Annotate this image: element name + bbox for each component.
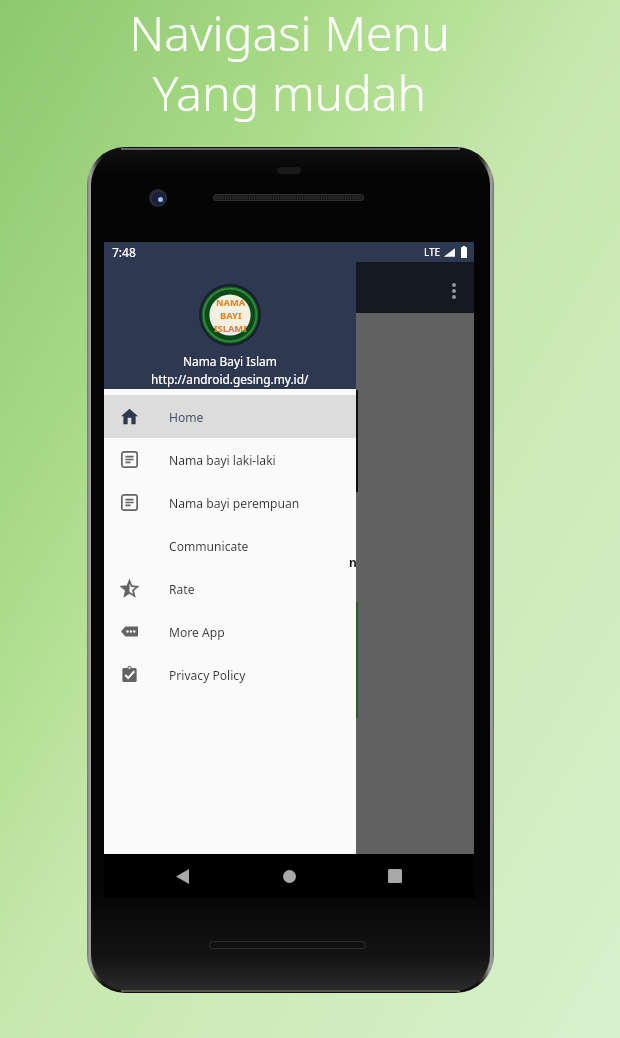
staticText: NAMA bbox=[216, 296, 246, 309]
staticText: Rate bbox=[169, 581, 195, 597]
button[interactable]: Recent apps bbox=[378, 854, 412, 898]
staticText: Navigasi Menu Yang mudah bbox=[129, 0, 450, 125]
button[interactable]: Communicate bbox=[104, 524, 356, 567]
staticText: http://android.gesing.my.id/ bbox=[151, 371, 309, 387]
button[interactable]: More App bbox=[104, 610, 356, 653]
staticText: More App bbox=[169, 624, 225, 640]
staticText: Nama bayi perempuan bbox=[169, 495, 300, 511]
button[interactable]: Nama bayi laki-laki bbox=[104, 438, 356, 481]
staticText: Home bbox=[169, 409, 204, 425]
staticText: 7:48 bbox=[112, 244, 136, 260]
button[interactable]: Rate bbox=[104, 567, 356, 610]
button[interactable]: More options bbox=[442, 279, 466, 303]
staticText: LTE bbox=[424, 245, 441, 259]
button[interactable]: Back bbox=[165, 854, 199, 898]
staticText: Privacy Policy bbox=[169, 667, 246, 683]
staticText: Communicate bbox=[169, 538, 249, 554]
staticText: ISLAMI bbox=[214, 322, 247, 335]
staticText: BAYI bbox=[220, 309, 242, 322]
button[interactable]: Home bbox=[104, 395, 356, 438]
button[interactable]: Nama bayi perempuan bbox=[104, 481, 356, 524]
staticText: Nama Bayi Islam bbox=[183, 353, 277, 369]
button[interactable]: Privacy Policy bbox=[104, 653, 356, 696]
staticText: Nama bayi laki-laki bbox=[169, 452, 276, 468]
button[interactable]: Home bbox=[272, 854, 306, 898]
staticText: n bbox=[349, 554, 357, 570]
